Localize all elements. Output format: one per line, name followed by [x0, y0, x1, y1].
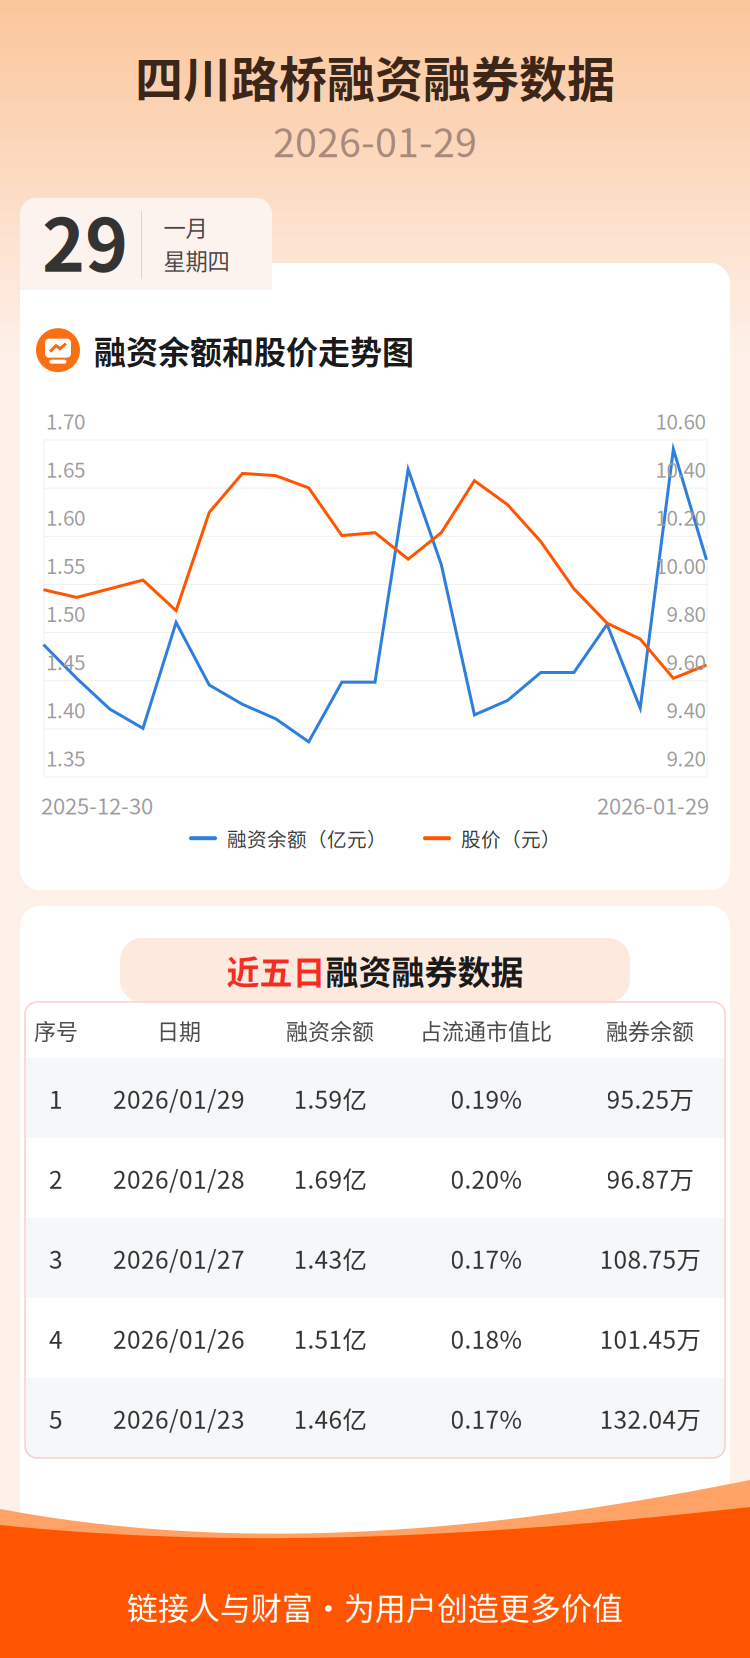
staticText: 融资余额（亿元） — [227, 824, 387, 852]
staticText: 2026/01/23 — [113, 1400, 245, 1436]
staticText: 9.40 — [666, 694, 705, 724]
staticText: 3 — [49, 1240, 63, 1276]
staticText: 9.20 — [666, 742, 705, 772]
staticText: 1 — [49, 1080, 63, 1116]
staticText: 2026/01/27 — [113, 1240, 245, 1276]
staticText: 101.45万 — [599, 1320, 700, 1356]
staticText: 4 — [49, 1320, 63, 1356]
staticText: 95.25万 — [606, 1080, 693, 1116]
staticText: 0.19% — [450, 1080, 521, 1116]
staticText: 1.43亿 — [293, 1240, 366, 1276]
staticText: 2026-01-29 — [597, 789, 709, 821]
staticText: 9.60 — [666, 646, 705, 676]
staticText: 1.45 — [46, 646, 85, 676]
staticText: 1.65 — [46, 454, 85, 484]
staticText: 132.04万 — [599, 1400, 700, 1436]
staticText: 108.75万 — [599, 1240, 700, 1276]
staticText: 10.00 — [655, 550, 705, 580]
staticText: 1.70 — [46, 405, 85, 435]
staticText: 2026-01-29 — [273, 111, 477, 169]
staticText: 2025-12-30 — [41, 789, 153, 821]
staticText: 1.40 — [46, 694, 85, 724]
staticText: 2026/01/29 — [113, 1080, 245, 1116]
staticText: 股价（元） — [461, 824, 561, 852]
staticText: 融资余额和股价走势图 — [94, 327, 414, 373]
staticText: 1.50 — [46, 598, 85, 628]
staticText: 10.60 — [655, 405, 705, 435]
staticText: 融券余额 — [606, 1014, 694, 1046]
staticText: 一月 — [163, 211, 207, 243]
staticText: 日期 — [157, 1014, 201, 1046]
staticText: 融资融券数据 — [325, 946, 523, 994]
staticText: 29 — [42, 187, 128, 293]
staticText: 近五日 — [226, 946, 325, 994]
staticText: 序号 — [34, 1014, 78, 1046]
staticText: 0.18% — [450, 1320, 521, 1356]
staticText: 0.20% — [450, 1160, 521, 1196]
staticText: 1.59亿 — [293, 1080, 366, 1116]
staticText: 10.20 — [655, 502, 705, 532]
staticText: 0.17% — [450, 1240, 521, 1276]
staticText: 占流通市值比 — [420, 1014, 552, 1046]
staticText: 1.60 — [46, 502, 85, 532]
staticText: 2026/01/28 — [113, 1160, 245, 1196]
staticText: 1.55 — [46, 550, 85, 580]
staticText: 1.69亿 — [293, 1160, 366, 1196]
staticText: 2026/01/26 — [113, 1320, 245, 1356]
staticText: 1.35 — [46, 742, 85, 772]
staticText: 1.46亿 — [293, 1400, 366, 1436]
staticText: 0.17% — [450, 1400, 521, 1436]
staticText: 2 — [49, 1160, 63, 1196]
staticText: 5 — [49, 1400, 63, 1436]
staticText: 10.40 — [655, 454, 705, 484]
staticText: 星期四 — [163, 244, 229, 276]
staticText: 1.51亿 — [293, 1320, 366, 1356]
staticText: 链接人与财富·为用户创造更多价值 — [127, 1584, 623, 1629]
staticText: 四川路桥融资融券数据 — [135, 41, 615, 111]
staticText: 融资余额 — [286, 1014, 374, 1046]
staticText: 9.80 — [666, 598, 705, 628]
staticText: 96.87万 — [606, 1160, 693, 1196]
